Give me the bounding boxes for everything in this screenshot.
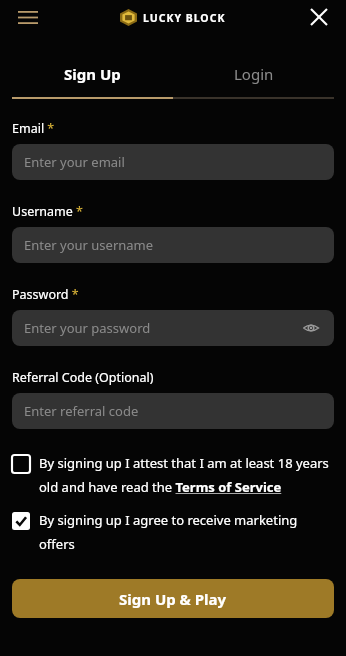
button[interactable]: Close: [306, 4, 332, 30]
staticText: Enter referral code: [24, 402, 139, 420]
staticText: By signing up I agree to receive marketi…: [39, 511, 334, 553]
staticText: Enter your email: [24, 153, 125, 171]
staticText: Username *: [12, 203, 83, 220]
staticText: Referral Code (Optional): [12, 369, 154, 386]
button[interactable]: Enter your password: [12, 310, 334, 346]
staticText: Email *: [12, 120, 55, 137]
staticText: Password *: [12, 286, 79, 303]
button[interactable]: Checked: [12, 512, 30, 530]
staticText: Sign Up: [64, 64, 121, 84]
button[interactable]: Enter referral code: [12, 393, 334, 429]
button[interactable]: Show password: [300, 317, 322, 339]
staticText: LUCKY BLOCK: [143, 11, 226, 25]
staticText: Login: [234, 64, 274, 84]
staticText: Sign Up & Play: [119, 589, 227, 609]
staticText: Enter your password: [24, 319, 151, 337]
button[interactable]: Checked: [12, 511, 334, 553]
button[interactable]: Sign Up & Play: [12, 579, 334, 618]
button[interactable]: Enter your username: [12, 227, 334, 263]
button[interactable]: Login: [173, 64, 334, 99]
button[interactable]: Menu: [16, 5, 40, 29]
button[interactable]: Sign Up: [12, 64, 173, 99]
staticText: By signing up I attest that I am at leas…: [39, 454, 334, 496]
button[interactable]: Unchecked: [12, 454, 334, 496]
staticText: Enter your username: [24, 236, 154, 254]
button[interactable]: Unchecked: [12, 455, 30, 473]
button[interactable]: Enter your email: [12, 144, 334, 180]
